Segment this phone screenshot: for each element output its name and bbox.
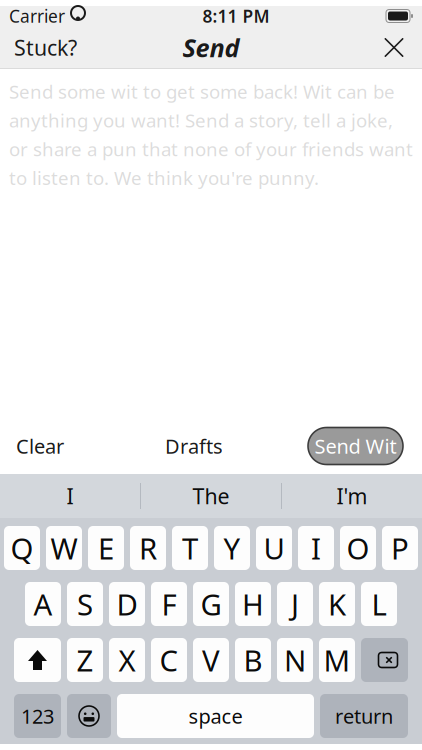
button[interactable]: B xyxy=(235,638,271,682)
button[interactable]: M xyxy=(319,638,355,682)
button[interactable]: The xyxy=(141,474,281,518)
staticText: K xyxy=(328,584,346,623)
button[interactable]: K xyxy=(319,582,355,626)
button[interactable]: Delete xyxy=(361,638,408,682)
button[interactable]: T xyxy=(172,526,208,570)
button[interactable]: 123 xyxy=(14,694,61,738)
staticText: O xyxy=(346,528,369,567)
staticText: Clear xyxy=(16,433,64,459)
staticText: Y xyxy=(223,528,240,567)
staticText: N xyxy=(284,640,306,679)
staticText: J xyxy=(291,584,299,623)
staticText: Z xyxy=(76,640,93,679)
button[interactable]: U xyxy=(256,526,292,570)
button[interactable]: Q xyxy=(4,526,40,570)
staticText: S xyxy=(77,584,93,623)
staticText: return xyxy=(335,703,393,729)
button[interactable]: X xyxy=(109,638,145,682)
button[interactable]: A xyxy=(25,582,61,626)
staticText: 123 xyxy=(21,703,54,729)
button[interactable]: I xyxy=(298,526,334,570)
button[interactable]: V xyxy=(193,638,229,682)
staticText: Stuck? xyxy=(14,33,77,62)
staticText: A xyxy=(33,584,52,623)
staticText: L xyxy=(371,584,386,623)
button[interactable]: R xyxy=(130,526,166,570)
staticText: R xyxy=(139,528,157,567)
button[interactable]: Send Wit xyxy=(308,427,403,464)
button[interactable]: H xyxy=(235,582,271,626)
button[interactable]: space xyxy=(117,694,314,738)
staticText: F xyxy=(161,584,176,623)
button[interactable]: S xyxy=(67,582,103,626)
button[interactable]: L xyxy=(361,582,397,626)
button[interactable]: C xyxy=(151,638,187,682)
button[interactable]: Drafts xyxy=(149,423,239,469)
staticText: E xyxy=(98,528,114,567)
staticText: M xyxy=(323,640,350,679)
staticText: X xyxy=(118,640,135,679)
staticText: B xyxy=(243,640,262,679)
staticText: T xyxy=(182,528,198,567)
button[interactable]: Y xyxy=(214,526,250,570)
staticText: Drafts xyxy=(165,433,223,459)
staticText: V xyxy=(202,640,220,679)
button[interactable]: return xyxy=(320,694,408,738)
staticText: Send Wit xyxy=(314,433,396,459)
button[interactable]: F xyxy=(151,582,187,626)
button[interactable]: Stuck? xyxy=(0,26,91,69)
button[interactable]: W xyxy=(46,526,82,570)
staticText: Send some wit to get some back! Wit can … xyxy=(9,79,413,190)
button[interactable]: I'm xyxy=(282,474,422,518)
staticText: U xyxy=(263,528,284,567)
staticText: 8:11 PM xyxy=(202,4,269,27)
staticText: space xyxy=(188,703,242,729)
staticText: P xyxy=(391,528,409,567)
button[interactable]: N xyxy=(277,638,313,682)
staticText: Send xyxy=(182,31,239,64)
button[interactable]: E xyxy=(88,526,124,570)
button[interactable]: I xyxy=(0,474,140,518)
button[interactable]: Shift xyxy=(14,638,61,682)
staticText: I xyxy=(66,482,73,510)
staticText: The xyxy=(192,482,229,510)
button[interactable]: Close xyxy=(366,26,422,69)
staticText: G xyxy=(200,584,221,623)
button[interactable]: Clear xyxy=(0,423,80,469)
staticText: W xyxy=(50,528,77,567)
staticText: I xyxy=(311,528,321,567)
staticText: Q xyxy=(10,528,33,567)
staticText: I'm xyxy=(336,482,367,510)
button[interactable]: P xyxy=(382,526,418,570)
button[interactable]: G xyxy=(193,582,229,626)
button[interactable]: D xyxy=(109,582,145,626)
button[interactable]: Emoji xyxy=(67,694,111,738)
button[interactable]: Z xyxy=(67,638,103,682)
staticText: C xyxy=(159,640,178,679)
button[interactable]: O xyxy=(340,526,376,570)
staticText: D xyxy=(116,584,137,623)
staticText: Carrier xyxy=(9,4,65,27)
staticText: H xyxy=(242,584,264,623)
button[interactable]: J xyxy=(277,582,313,626)
